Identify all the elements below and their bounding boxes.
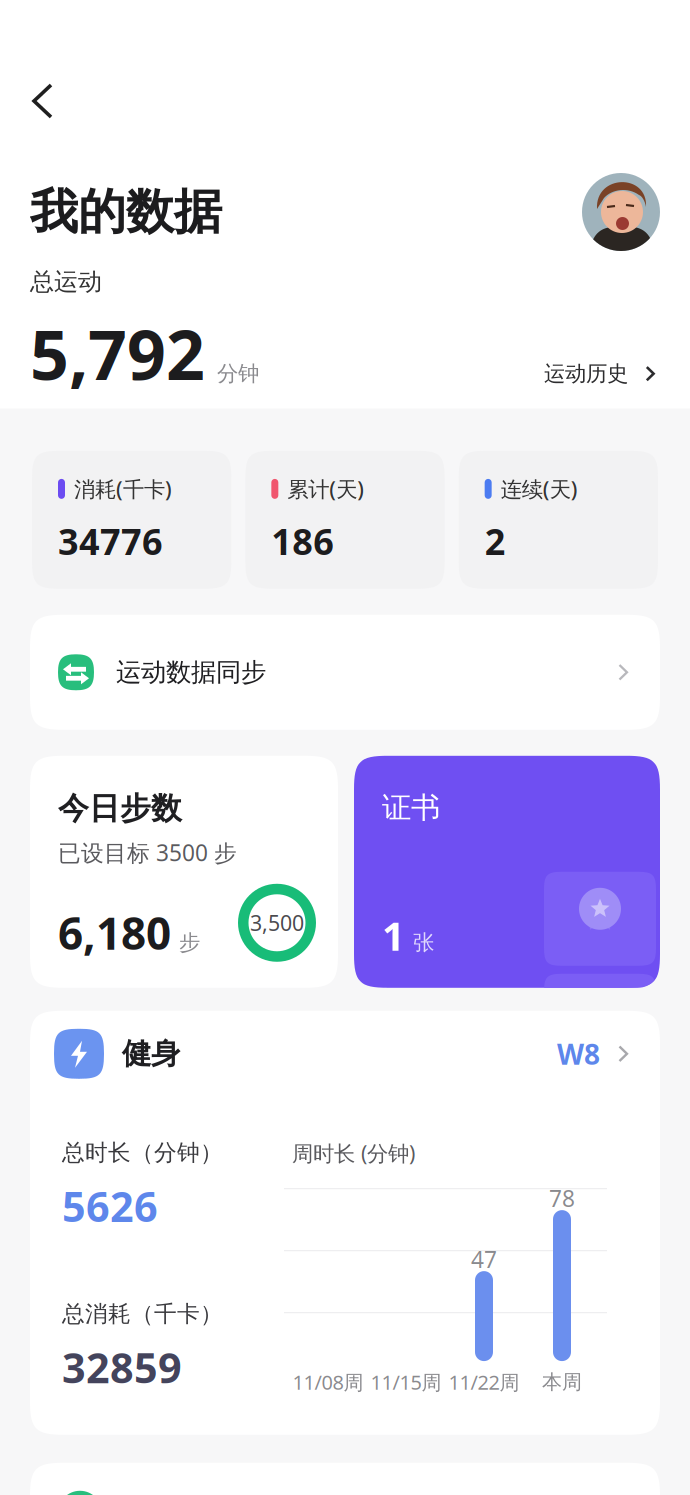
- button[interactable]: Profile: [582, 173, 660, 251]
- staticText: 1: [382, 909, 405, 962]
- button[interactable]: Back: [0, 73, 58, 129]
- staticText: 5626: [62, 1179, 158, 1233]
- staticText: 11/15周: [370, 1369, 441, 1395]
- staticText: 总消耗（千卡）: [62, 1300, 223, 1328]
- staticText: 32859: [62, 1340, 182, 1395]
- staticText: 34776: [58, 517, 163, 565]
- staticText: 证书: [382, 790, 440, 826]
- staticText: 总运动: [30, 267, 102, 296]
- staticText: 5,792: [30, 308, 205, 399]
- staticText: 运动历史: [544, 361, 628, 387]
- staticText: 我的数据: [30, 182, 222, 241]
- staticText: 分钟: [217, 361, 259, 387]
- staticText: 消耗(千卡): [74, 475, 172, 503]
- staticText: 连续(天): [501, 475, 578, 503]
- button[interactable]: 证书: [354, 756, 660, 988]
- button[interactable]: 今日步数: [30, 756, 338, 988]
- staticText: 今日步数: [58, 790, 182, 827]
- staticText: 张: [413, 930, 434, 956]
- staticText: 11/22周: [448, 1369, 519, 1395]
- staticText: 本周: [542, 1370, 582, 1394]
- staticText: 总时长（分钟）: [62, 1139, 223, 1167]
- staticText: 6,180: [58, 903, 171, 962]
- staticText: W8: [557, 1035, 600, 1072]
- button[interactable]: 运动历史: [544, 361, 660, 399]
- staticText: 运动数据同步: [116, 657, 266, 688]
- staticText: 3,500: [250, 909, 304, 937]
- staticText: 11/08周: [292, 1369, 363, 1395]
- button[interactable]: 健身: [30, 1011, 660, 1097]
- staticText: 78: [549, 1183, 575, 1213]
- staticText: 47: [471, 1244, 497, 1274]
- staticText: 累计(天): [287, 475, 364, 503]
- button[interactable]: 运动数据同步: [30, 615, 660, 730]
- staticText: 周时长 (分钟): [292, 1139, 415, 1167]
- staticText: 已设目标 3500 步: [58, 837, 237, 867]
- staticText: 步: [179, 930, 200, 956]
- staticText: 健身: [122, 1036, 180, 1072]
- staticText: 186: [271, 517, 334, 565]
- staticText: 2: [485, 517, 506, 565]
